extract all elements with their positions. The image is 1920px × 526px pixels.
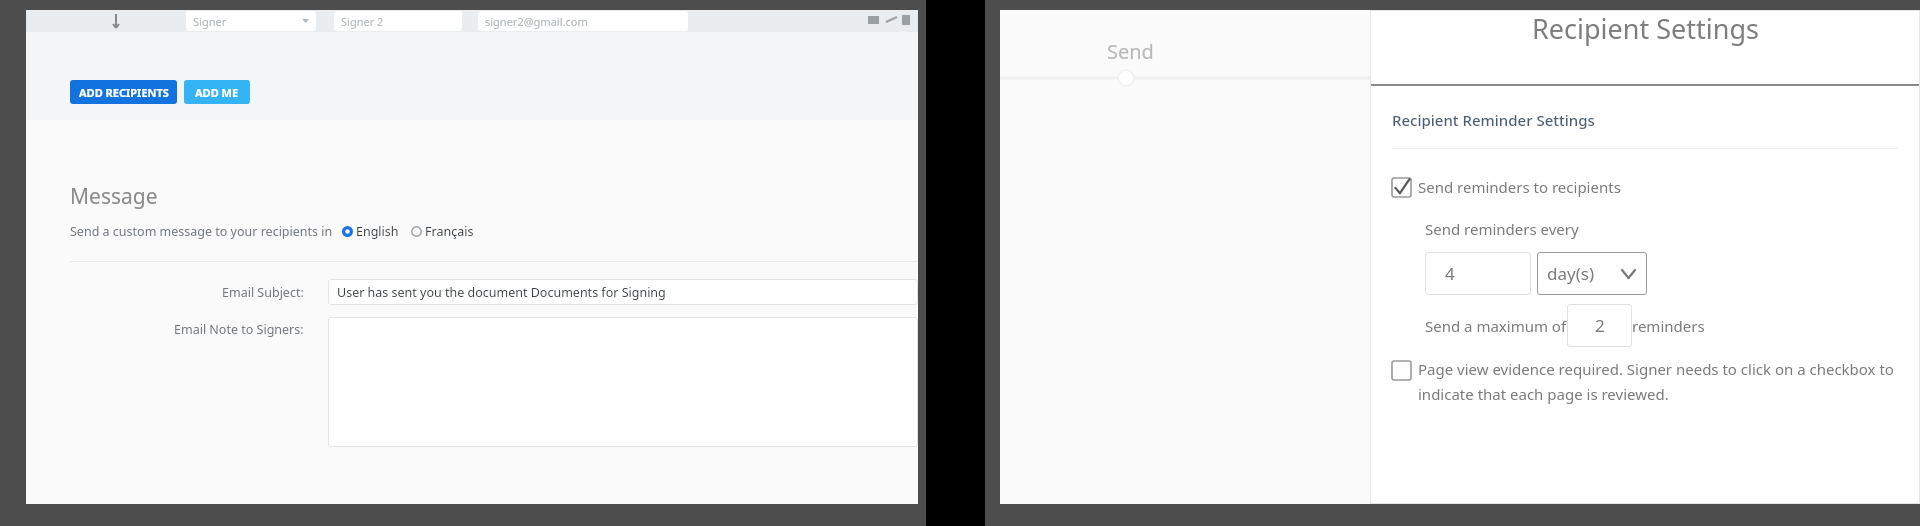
button[interactable]: Français	[410, 223, 475, 240]
button[interactable]: ADD ME	[184, 80, 250, 104]
staticText: Signer	[193, 14, 227, 29]
button[interactable]: 2	[1567, 304, 1632, 347]
staticText: 4	[1445, 262, 1455, 285]
staticText: ADD ME	[195, 85, 239, 100]
staticText: reminders	[1632, 316, 1705, 336]
staticText: Email Subject:	[222, 284, 304, 301]
staticText: day(s)	[1547, 262, 1595, 285]
staticText: Send a maximum of	[1425, 316, 1567, 336]
other: Unchecked	[1392, 361, 1411, 380]
button[interactable]: signer2@gmail.com	[478, 11, 688, 31]
staticText: Français	[425, 223, 474, 240]
button[interactable]: ADD RECIPIENTS	[70, 80, 177, 104]
staticText: Page view evidence required. Signer need…	[1418, 359, 1904, 404]
staticText: signer2@gmail.com	[485, 14, 588, 29]
staticText: ADD RECIPIENTS	[79, 85, 169, 100]
staticText: Send reminders every	[1425, 219, 1579, 239]
button[interactable]: Checked	[1392, 177, 1621, 197]
button[interactable]: User has sent you the document Documents…	[328, 279, 918, 305]
button[interactable]: Signer 2	[334, 11, 462, 31]
button[interactable]	[328, 317, 918, 447]
staticText: Send reminders to recipients	[1418, 177, 1621, 197]
staticText: Recipient Settings	[1532, 10, 1759, 47]
button[interactable]: English	[341, 223, 400, 240]
staticText: 2	[1595, 314, 1605, 337]
staticText: Recipient Reminder Settings	[1392, 110, 1595, 130]
button[interactable]: Unchecked	[1392, 359, 1904, 404]
staticText: User has sent you the document Documents…	[337, 284, 666, 301]
button[interactable]: Signer	[186, 11, 316, 31]
staticText: Message	[70, 182, 158, 211]
staticText: Email Note to Signers:	[174, 321, 304, 338]
staticText: Signer 2	[341, 14, 384, 29]
staticText: Send	[1107, 38, 1154, 65]
button[interactable]: 4	[1425, 252, 1531, 295]
staticText: English	[356, 223, 399, 240]
staticText: Send a custom message to your recipients…	[70, 223, 333, 240]
other: Checked	[1392, 178, 1411, 197]
button[interactable]: day(s)	[1537, 252, 1647, 295]
